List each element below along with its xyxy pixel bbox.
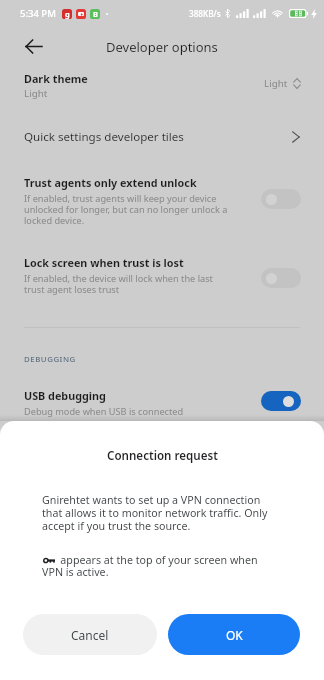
button[interactable]: Toggle off [261,268,301,288]
button[interactable]: OK [168,614,300,655]
staticText: Debug mode when USB is connected [24,405,184,418]
staticText: If enabled, trust agents will keep your … [24,192,229,226]
staticText: Lock screen when trust is lost [24,255,184,270]
staticText: Connection request [107,448,218,464]
button[interactable]: Back [17,30,49,62]
staticText: g [65,9,70,19]
button[interactable]: Dark theme [0,64,324,108]
staticText: Quick settings developer tiles [24,129,184,145]
staticText: If enabled, the device will lock when th… [24,272,229,295]
staticText: 5:34 PM [20,7,56,20]
staticText: Trust agents only extend unlock [24,175,197,190]
button[interactable]: Lock screen when trust is lost [0,249,324,295]
button[interactable]: USB debugging [0,383,324,419]
staticText: USB debugging [24,388,106,403]
button[interactable]: Quick settings developer tiles [0,118,324,156]
button[interactable]: Cancel [23,614,157,655]
staticText: OK [226,627,243,643]
staticText: 388KB/s [189,8,221,19]
button[interactable]: Toggle on [261,391,301,411]
staticText: DEBUGGING [24,354,76,365]
staticText: B [93,9,98,19]
staticText: Light [264,77,288,90]
button[interactable]: Trust agents only extend unlock [0,169,324,225]
button[interactable]: Toggle off [261,189,301,209]
staticText: Gnirehtet wants to set up a VPN connecti… [42,493,282,533]
staticText: Light [24,87,48,100]
staticText: Developer options [106,38,218,56]
staticText: Dark theme [24,71,88,86]
staticText: Cancel [71,627,109,643]
staticText: appears at the top of your screen when V… [42,553,272,579]
